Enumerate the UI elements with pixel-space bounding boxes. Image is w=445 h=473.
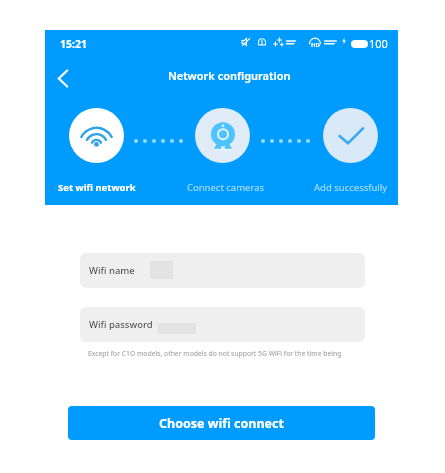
staticText: Set wifi network xyxy=(58,181,136,194)
staticText: Except for C1O models, other models do n… xyxy=(88,349,378,358)
button[interactable]: Back xyxy=(49,64,77,92)
button[interactable]: Add successfully xyxy=(314,108,388,194)
button[interactable]: Set wifi network xyxy=(58,108,136,194)
button[interactable]: Wifi password xyxy=(80,307,365,342)
staticText: Add successfully xyxy=(314,181,388,194)
staticText: Network configuration xyxy=(168,68,291,83)
button[interactable]: Wifi name xyxy=(80,253,365,288)
staticText: Choose wifi connect xyxy=(159,415,284,432)
button[interactable]: Connect cameras xyxy=(187,108,265,194)
staticText: Wifi password xyxy=(89,318,153,331)
staticText: 100 xyxy=(369,36,388,51)
staticText: 15:21 xyxy=(60,37,87,51)
button[interactable]: Choose wifi connect xyxy=(68,406,375,440)
staticText: Connect cameras xyxy=(187,181,265,194)
staticText: Wifi name xyxy=(89,264,135,277)
staticText: HD xyxy=(311,41,320,49)
